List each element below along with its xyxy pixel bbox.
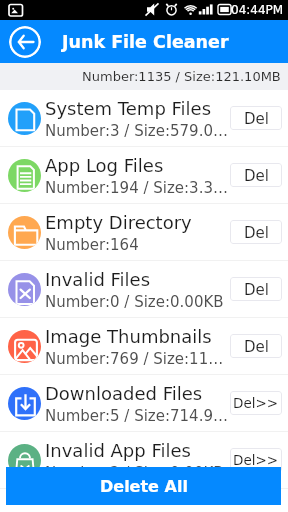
staticText: Del (244, 167, 269, 184)
staticText: System Temp Files (45, 98, 212, 119)
staticText: Number:164 (45, 236, 139, 253)
staticText: Del (244, 281, 269, 298)
button[interactable]: Del>> (230, 448, 282, 472)
button[interactable]: Del (230, 106, 282, 130)
button[interactable]: Back (9, 26, 41, 58)
staticText: Invalid App Files (45, 440, 191, 461)
staticText: Del (244, 110, 269, 127)
staticText: Empty Directory (45, 212, 192, 233)
staticText: Number:0 / Size:0.00KB (45, 293, 224, 310)
staticText: Number:5 / Size:714.9… (45, 407, 228, 424)
staticText: Junk File Cleaner (62, 32, 229, 52)
button[interactable]: Image Thumbnails (0, 318, 288, 374)
button[interactable]: Del (230, 220, 282, 244)
button[interactable]: Del (230, 334, 282, 358)
staticText: Del>> (233, 452, 279, 468)
staticText: Number:1135 / Size:121.10MB (82, 69, 281, 84)
staticText: Image Thumbnails (45, 326, 212, 347)
staticText: Del (244, 338, 269, 355)
staticText: Invalid Files (45, 269, 151, 290)
button[interactable]: Invalid Files (0, 261, 288, 317)
button[interactable]: System Temp Files (0, 90, 288, 146)
staticText: Number:769 / Size:116… (45, 350, 228, 367)
staticText: App Log Files (45, 155, 164, 176)
button[interactable]: Del>> (230, 391, 282, 415)
button[interactable]: App Log Files (0, 147, 288, 203)
button[interactable]: Downloaded Files (0, 375, 288, 431)
staticText: Number:2 / Size:0.00KB (45, 464, 224, 481)
staticText: Number:3 / Size:579.0… (45, 122, 228, 139)
button[interactable]: Empty Directory (0, 204, 288, 260)
staticText: Delete All (100, 477, 188, 496)
staticText: Downloaded Files (45, 383, 203, 404)
button[interactable]: Delete All (6, 467, 281, 505)
button[interactable]: Invalid App Files (0, 432, 288, 488)
staticText: Del>> (233, 395, 279, 411)
staticText: Del (244, 224, 269, 241)
staticText: Number:194 / Size:3.3… (45, 179, 228, 196)
button[interactable]: Del (230, 277, 282, 301)
staticText: 04:44PM (231, 3, 284, 17)
button[interactable]: Del (230, 163, 282, 187)
